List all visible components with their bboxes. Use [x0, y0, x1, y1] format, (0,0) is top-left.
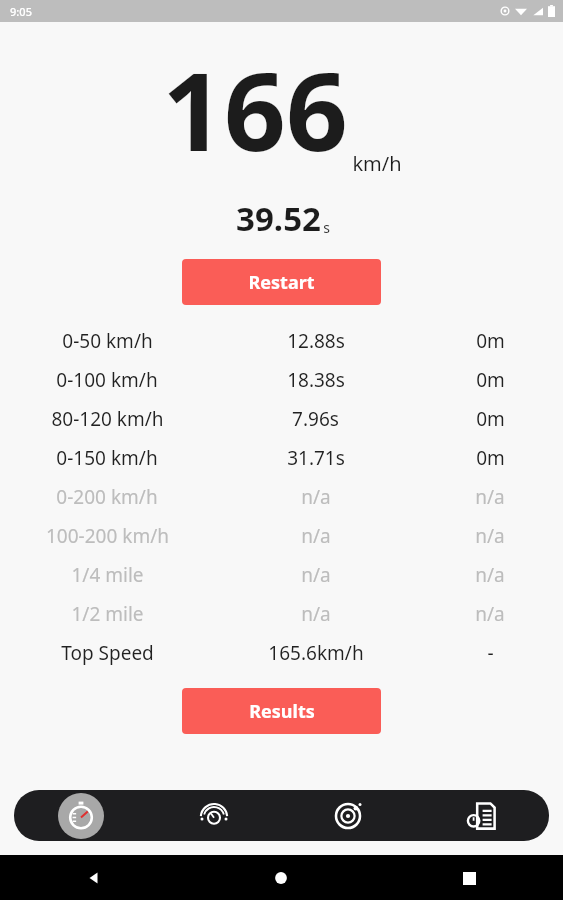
button[interactable]: Results — [182, 688, 381, 734]
staticText: n/a — [301, 484, 331, 510]
button[interactable]: 0-150 km/h — [0, 438, 563, 477]
staticText: 1/2 mile — [71, 601, 144, 627]
staticText: n/a — [475, 562, 505, 588]
staticText: - — [487, 640, 494, 666]
button[interactable]: 0-50 km/h — [0, 321, 563, 360]
button[interactable]: 80-120 km/h — [0, 399, 563, 438]
staticText: n/a — [301, 601, 331, 627]
staticText: 0m — [476, 328, 505, 354]
button[interactable]: 1/2 mile — [0, 594, 563, 633]
staticText: km/h — [352, 150, 402, 177]
staticText: 0m — [476, 367, 505, 393]
staticText: 0-200 km/h — [56, 484, 158, 510]
button[interactable]: Recent apps — [375, 872, 563, 885]
staticText: 80-120 km/h — [51, 406, 164, 432]
staticText: 9:05 — [10, 4, 32, 19]
staticText: n/a — [475, 601, 505, 627]
button[interactable]: History — [415, 790, 549, 841]
staticText: 0m — [476, 445, 505, 471]
staticText: Restart — [248, 270, 315, 295]
button[interactable]: Back — [0, 870, 187, 886]
button[interactable]: Top Speed — [0, 633, 563, 672]
staticText: 7.96s — [292, 406, 339, 432]
staticText: 0-150 km/h — [56, 445, 158, 471]
staticText: 0-100 km/h — [56, 367, 158, 393]
button[interactable]: 0-100 km/h — [0, 360, 563, 399]
button[interactable]: Restart — [182, 259, 381, 305]
button[interactable]: 1/4 mile — [0, 555, 563, 594]
staticText: s — [323, 218, 330, 237]
staticText: 166 — [162, 36, 348, 183]
staticText: n/a — [301, 523, 331, 549]
staticText: 31.71s — [287, 445, 345, 471]
staticText: 0-50 km/h — [62, 328, 153, 354]
button[interactable]: 100-200 km/h — [0, 516, 563, 555]
staticText: 165.6km/h — [268, 640, 364, 666]
staticText: 12.88s — [287, 328, 345, 354]
staticText: n/a — [301, 562, 331, 588]
staticText: 39.52 — [236, 196, 321, 241]
staticText: n/a — [475, 523, 505, 549]
button[interactable]: 0-200 km/h — [0, 477, 563, 516]
button[interactable]: Target — [281, 790, 415, 841]
button[interactable]: Gauges — [147, 790, 281, 841]
staticText: n/a — [475, 484, 505, 510]
staticText: 1/4 mile — [71, 562, 144, 588]
staticText: Top Speed — [61, 640, 154, 666]
button[interactable]: Speedometer — [14, 790, 147, 841]
staticText: 100-200 km/h — [46, 523, 169, 549]
staticText: 0m — [476, 406, 505, 432]
button[interactable]: Home — [187, 871, 375, 885]
staticText: Results — [249, 699, 315, 724]
staticText: 18.38s — [287, 367, 345, 393]
